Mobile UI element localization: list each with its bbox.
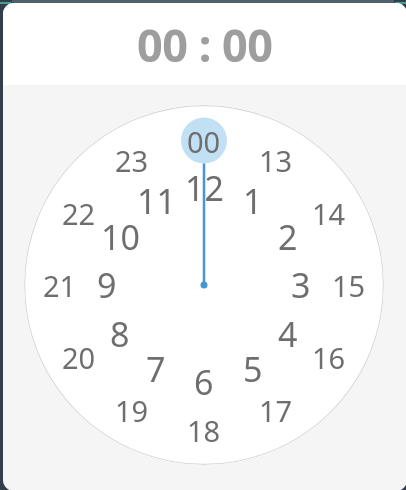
staticText: 3 [291, 262, 311, 308]
button[interactable]: 00 : 00 [3, 3, 406, 85]
staticText: 19 [115, 391, 149, 430]
staticText: 12 [185, 165, 224, 211]
staticText: 00 [187, 122, 221, 161]
staticText: 22 [62, 194, 96, 233]
staticText: 23 [115, 141, 149, 180]
staticText: 17 [259, 391, 293, 430]
staticText: 6 [194, 359, 214, 405]
staticText: 13 [259, 141, 293, 180]
staticText: 8 [110, 311, 130, 357]
staticText: 20 [62, 338, 96, 377]
staticText: 14 [312, 194, 346, 233]
staticText: 9 [97, 262, 117, 308]
staticText: 1 [243, 178, 263, 224]
staticText: 7 [146, 346, 166, 392]
staticText: 16 [312, 338, 346, 377]
button[interactable]: 12 [24, 105, 384, 465]
staticText: 21 [43, 266, 77, 305]
staticText: 5 [243, 346, 263, 392]
staticText: 10 [101, 214, 140, 260]
staticText: 2 [278, 214, 298, 260]
staticText: 11 [137, 178, 176, 224]
staticText: 15 [332, 266, 366, 305]
staticText: 00 : 00 [137, 14, 273, 75]
staticText: 18 [187, 411, 221, 450]
staticText: 4 [278, 311, 298, 357]
